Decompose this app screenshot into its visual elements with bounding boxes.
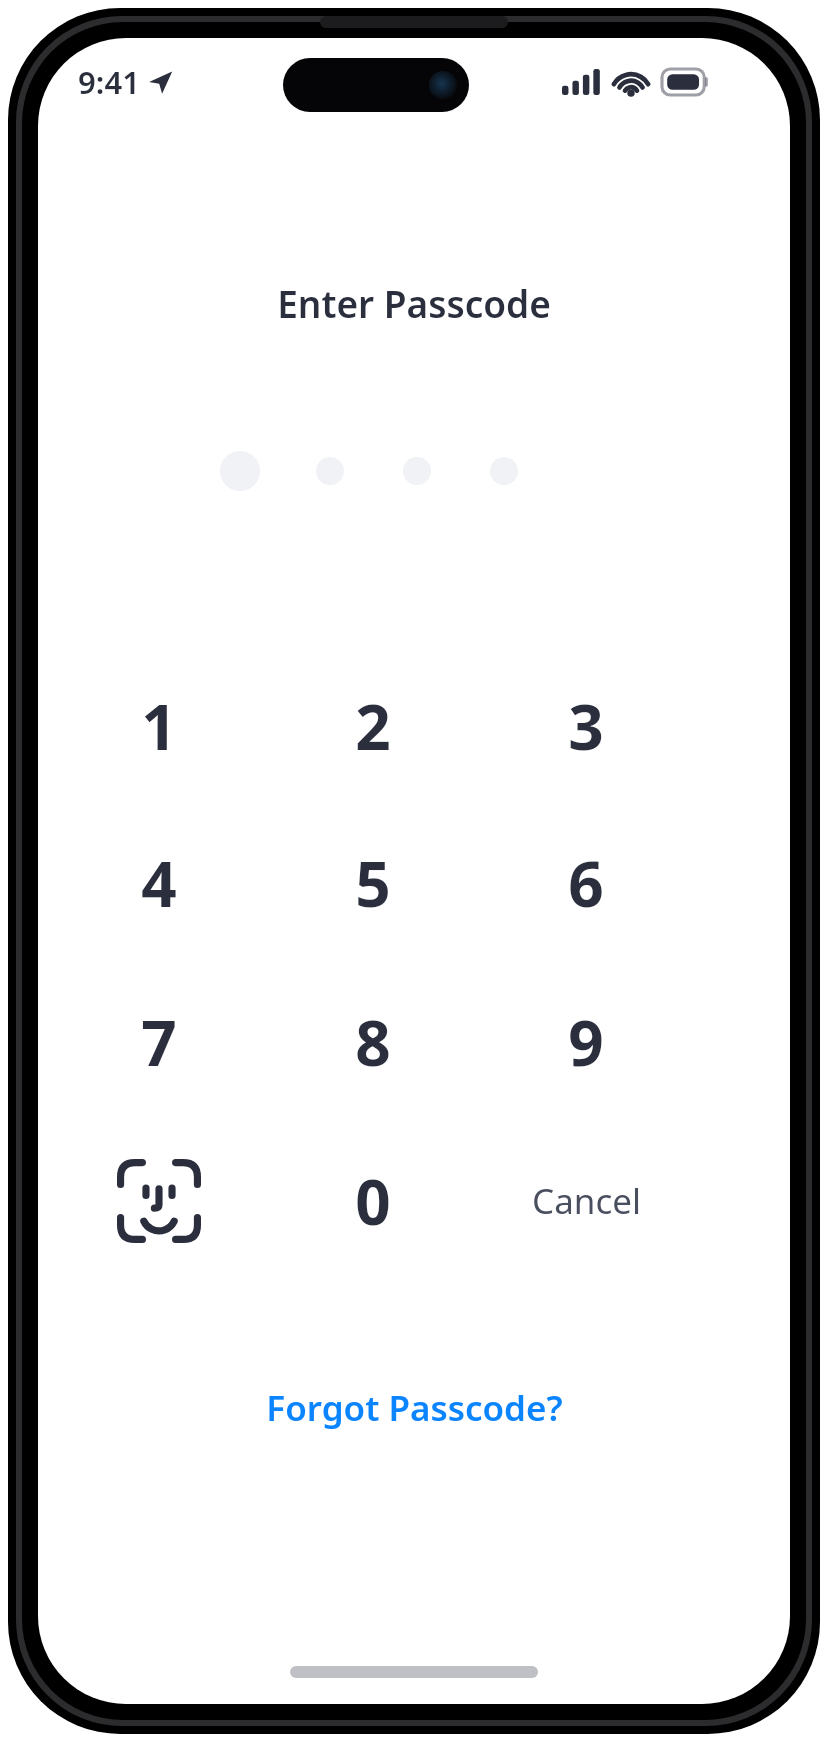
button[interactable]: 6	[511, 808, 661, 958]
staticText: 5	[355, 841, 391, 925]
button[interactable]: 1	[84, 651, 234, 801]
button[interactable]: 5	[298, 808, 448, 958]
staticText: 2	[355, 684, 391, 768]
staticText: Enter Passcode	[277, 278, 551, 328]
staticText: 9	[568, 1000, 604, 1084]
button[interactable]: 2	[298, 651, 448, 801]
staticText: 3	[568, 684, 604, 768]
button[interactable]: Forgot Passcode?	[242, 1372, 587, 1444]
staticText: 6	[568, 841, 604, 925]
button[interactable]: 9	[511, 967, 661, 1117]
staticText: 8	[355, 1000, 391, 1084]
staticText: 7	[141, 1000, 177, 1084]
button[interactable]: 0	[298, 1126, 448, 1276]
staticText: Forgot Passcode?	[266, 1384, 563, 1432]
staticText: 4	[141, 841, 177, 925]
button[interactable]: 8	[298, 967, 448, 1117]
button[interactable]: 3	[511, 651, 661, 801]
staticText: 1	[141, 684, 177, 768]
button[interactable]: 7	[84, 967, 234, 1117]
staticText: 0	[355, 1159, 391, 1243]
button[interactable]: Face ID	[84, 1126, 234, 1276]
staticText: 9:41	[78, 61, 140, 103]
staticText: Cancel	[532, 1177, 641, 1225]
button[interactable]: 4	[84, 808, 234, 958]
button[interactable]: Cancel	[496, 1141, 676, 1261]
